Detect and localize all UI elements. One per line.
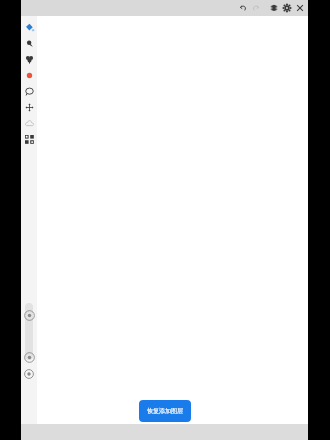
button[interactable]: Opacity [22, 350, 36, 364]
button[interactable]: Lasso [21, 83, 37, 99]
button[interactable]: 恢复添加图层 [139, 400, 191, 422]
button[interactable]: Grid [21, 131, 37, 147]
button[interactable]: Opacity [22, 367, 36, 381]
button[interactable]: Cloud [21, 115, 37, 131]
button[interactable]: Stamp [21, 51, 37, 67]
staticText: 恢复添加图层 [147, 407, 183, 415]
button[interactable]: Undo [236, 0, 249, 16]
button[interactable]: Brush size [22, 308, 36, 322]
button[interactable]: Brush [21, 35, 37, 51]
button[interactable]: Close [293, 0, 306, 16]
button[interactable]: Move [21, 99, 37, 115]
button[interactable]: Color [21, 67, 37, 83]
button[interactable] [25, 303, 33, 360]
button[interactable]: Settings [280, 0, 293, 16]
button[interactable]: Fill tool [21, 19, 37, 35]
button[interactable]: Redo [249, 0, 262, 16]
button[interactable]: Layers [267, 0, 280, 16]
